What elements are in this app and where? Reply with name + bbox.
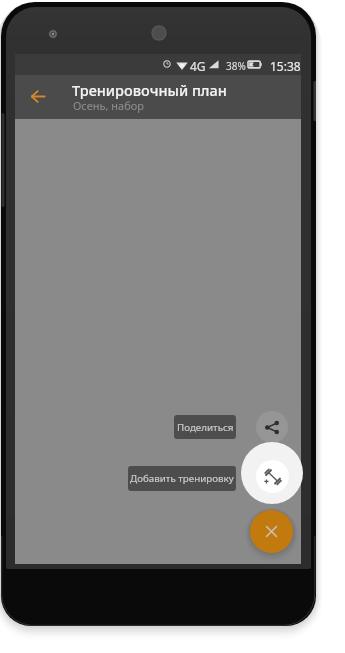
button[interactable]: Поделиться: [174, 415, 236, 439]
button[interactable]: Close menu: [250, 510, 293, 553]
button[interactable]: Share: [256, 411, 288, 443]
staticText: 38%: [226, 59, 246, 73]
staticText: Осень, набор: [73, 98, 144, 113]
button[interactable]: Добавить тренировку: [128, 466, 236, 491]
button[interactable]: Add workout: [256, 460, 289, 493]
staticText: Поделиться: [177, 421, 234, 434]
staticText: Добавить тренировку: [130, 472, 234, 485]
staticText: 4G: [190, 58, 206, 74]
staticText: 15:38: [270, 58, 301, 74]
staticText: Тренировочный план: [72, 80, 227, 100]
button[interactable]: Back: [22, 80, 54, 112]
